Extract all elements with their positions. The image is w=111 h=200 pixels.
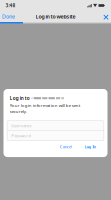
staticText: Username xyxy=(11,123,31,128)
staticText: Your login information will be sent xyxy=(10,103,81,108)
staticText: Password xyxy=(11,133,31,139)
staticText: Cancel xyxy=(60,144,72,149)
staticText: 3:48 xyxy=(5,2,15,9)
staticText: Done xyxy=(2,13,15,20)
button[interactable]: Done xyxy=(0,11,18,22)
button[interactable]: Cancel xyxy=(60,142,72,151)
staticText: Log in to website xyxy=(35,13,75,20)
button[interactable]: Log In xyxy=(84,142,96,151)
staticText: Log in to xyxy=(10,95,30,101)
staticText: Log In xyxy=(84,144,96,149)
staticText: securely. xyxy=(10,108,27,114)
button[interactable]: Close xyxy=(101,11,111,22)
